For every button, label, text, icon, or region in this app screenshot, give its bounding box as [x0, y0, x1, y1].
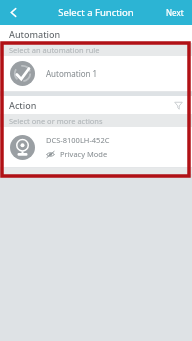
- staticText: Select one or more actions: [9, 116, 103, 126]
- button[interactable]: Next: [158, 2, 192, 23]
- staticText: Automation: [9, 28, 61, 40]
- staticText: Next: [166, 7, 184, 18]
- button[interactable]: Automation 1: [0, 56, 192, 91]
- staticText: Privacy Mode: [60, 149, 108, 159]
- staticText: Select an automation rule: [9, 45, 100, 55]
- staticText: Automation 1: [46, 68, 98, 79]
- button[interactable]: DCS-8100LH-452C: [0, 127, 192, 167]
- button[interactable]: Back: [0, 0, 26, 25]
- button[interactable]: Filter: [170, 97, 186, 113]
- staticText: Action: [9, 99, 37, 111]
- staticText: DCS-8100LH-452C: [46, 135, 110, 145]
- staticText: Select a Function: [58, 6, 134, 19]
